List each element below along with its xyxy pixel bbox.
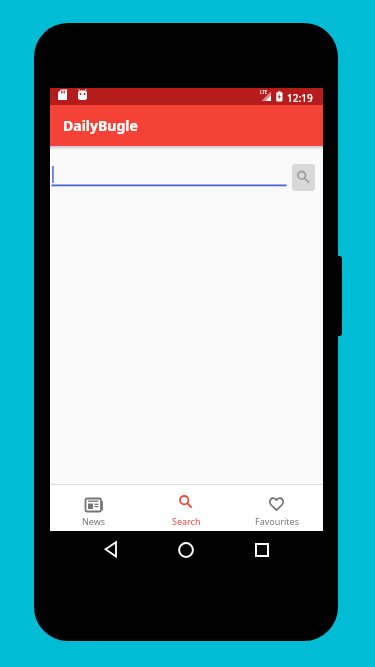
button[interactable] — [247, 536, 277, 564]
staticText: LTE — [260, 89, 268, 95]
button[interactable] — [51, 160, 287, 187]
button[interactable]: News — [64, 486, 124, 530]
staticText: 12:19 — [287, 91, 313, 105]
button[interactable] — [96, 536, 126, 564]
button[interactable]: Search — [156, 486, 216, 530]
staticText: News — [82, 515, 106, 527]
button[interactable]: Favourites — [247, 486, 307, 530]
button[interactable] — [171, 536, 201, 564]
staticText: Search — [172, 515, 201, 527]
staticText: DailyBugle — [63, 116, 138, 135]
button[interactable] — [292, 164, 315, 191]
staticText: Favourites — [255, 515, 299, 527]
